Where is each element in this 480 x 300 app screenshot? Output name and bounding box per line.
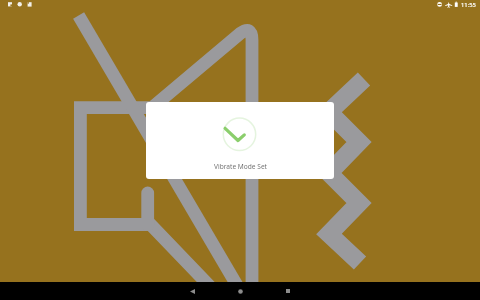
button[interactable]: Home xyxy=(222,282,258,300)
button[interactable]: Recent apps xyxy=(270,282,306,300)
staticText: Vibrate Mode Set xyxy=(214,162,267,171)
staticText: 11:55 xyxy=(461,1,476,9)
button[interactable]: Back xyxy=(174,282,210,300)
button[interactable]: Vibrate Mode Set xyxy=(146,102,334,179)
